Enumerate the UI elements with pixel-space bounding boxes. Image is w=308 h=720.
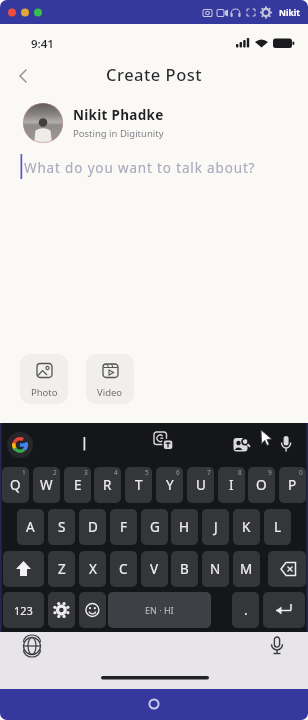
button[interactable]: B [171,551,198,587]
staticText: U [196,476,206,494]
button[interactable]: Z [48,551,75,587]
button[interactable] [0,689,308,720]
button[interactable]: 123 [3,592,44,628]
button[interactable]: F [110,509,137,545]
staticText: Create Post [106,63,203,85]
button[interactable]: G [141,509,168,545]
button[interactable]: X [79,551,106,587]
button[interactable]: H [171,509,198,545]
button[interactable] [14,66,34,86]
button[interactable] [263,592,305,628]
staticText: Y [166,476,174,494]
button[interactable]: L [264,509,291,545]
staticText: 6 [176,468,180,477]
button[interactable]: O [248,467,275,503]
button[interactable]: E [64,467,91,503]
staticText: M [240,560,253,578]
button[interactable]: I [218,467,245,503]
button[interactable]: R [94,467,121,503]
staticText: N [210,560,221,578]
staticText: F [120,518,128,536]
staticText: L [274,518,282,536]
button[interactable]: N [202,551,229,587]
staticText: 5 [145,468,149,477]
staticText: Photo [31,386,58,399]
staticText: 8 [238,468,242,477]
staticText: D [88,518,98,536]
button[interactable]: U [187,467,214,503]
button[interactable]: V [141,551,168,587]
staticText: EN · HI [145,604,174,616]
staticText: 4 [114,468,118,477]
staticText: V [150,560,159,578]
button[interactable]: . [232,592,259,628]
button[interactable]: Q [2,467,29,503]
staticText: G [150,518,160,536]
button[interactable]: P [279,467,306,503]
staticText: 9 [268,468,272,477]
staticText: 9:41 [31,36,54,52]
button[interactable]: EN · HI [108,592,211,628]
button[interactable] [79,592,106,628]
staticText: 123 [14,603,33,618]
staticText: Q [10,476,21,494]
staticText: 0 [299,468,303,477]
staticText: Nikit Phadke [73,106,164,124]
button[interactable]: K [233,509,260,545]
staticText: P [288,476,297,494]
staticText: X [89,560,97,578]
button[interactable]: Nikit Phadke [23,103,283,143]
button[interactable]: J [202,509,229,545]
staticText: W [40,476,53,494]
button[interactable] [3,551,44,587]
button[interactable]: T [125,467,152,503]
staticText: S [58,518,66,536]
staticText: 3 [84,468,88,477]
staticText: K [242,518,251,536]
staticText: B [180,560,189,578]
button[interactable]: S [48,509,75,545]
staticText: 7 [207,468,211,477]
button[interactable]: Nikit [279,7,300,19]
button[interactable]: Photo [20,354,68,404]
staticText: R [103,476,112,494]
staticText: E [74,476,82,494]
staticText: O [256,476,267,494]
staticText: C [119,560,128,578]
staticText: 2 [53,468,57,477]
staticText: J [214,518,218,536]
staticText: I [229,476,234,494]
button[interactable]: M [233,551,260,587]
button[interactable] [48,592,75,628]
staticText: T [135,476,143,494]
staticText: What do you want to talk about? [24,159,256,177]
button[interactable]: C [110,551,137,587]
button[interactable]: Video [86,354,134,404]
staticText: Z [58,560,66,578]
staticText: 1 [22,468,26,477]
staticText: H [179,518,190,536]
button[interactable]: W [33,467,60,503]
staticText: Video [97,386,123,399]
staticText: . [244,601,248,619]
staticText: A [26,518,35,536]
button[interactable]: A [17,509,44,545]
button[interactable]: Y [156,467,183,503]
button[interactable]: D [79,509,106,545]
button[interactable] [268,551,306,587]
button[interactable]: What do you want to talk about? [20,153,290,181]
staticText: Posting in Digitunity [73,127,164,140]
